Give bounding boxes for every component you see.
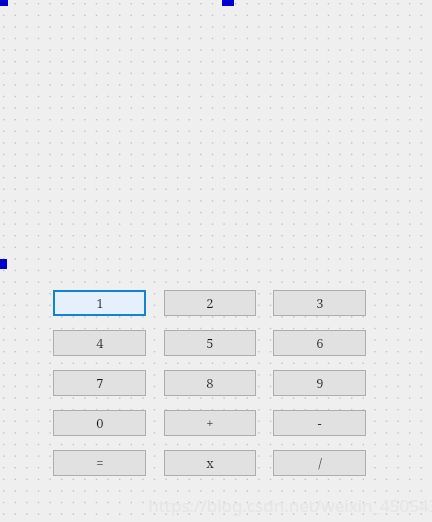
staticText: 0 (96, 414, 104, 432)
button[interactable]: 2 (164, 290, 256, 316)
staticText: - (317, 414, 322, 432)
button[interactable]: = (53, 450, 146, 476)
button[interactable]: + (164, 410, 256, 436)
staticText: x (206, 454, 214, 472)
staticText: 8 (206, 374, 214, 392)
staticText: 4 (96, 334, 104, 352)
button[interactable]: 0 (53, 410, 146, 436)
staticText: 9 (316, 374, 324, 392)
staticText: https://blog.csdn.net/weixin_45054387 (148, 494, 432, 517)
staticText: 2 (206, 294, 214, 312)
button[interactable]: x (164, 450, 256, 476)
button[interactable]: 1 (53, 290, 146, 316)
staticText: 6 (316, 334, 324, 352)
staticText: = (96, 454, 104, 472)
button[interactable]: 9 (273, 370, 366, 396)
staticText: + (206, 414, 214, 432)
button[interactable]: / (273, 450, 366, 476)
button[interactable]: - (273, 410, 366, 436)
button[interactable]: 5 (164, 330, 256, 356)
button[interactable]: 7 (53, 370, 146, 396)
staticText: / (318, 454, 322, 472)
button[interactable]: 6 (273, 330, 366, 356)
staticText: 1 (96, 294, 104, 312)
button[interactable]: 4 (53, 330, 146, 356)
staticText: 3 (316, 294, 324, 312)
button[interactable]: 3 (273, 290, 366, 316)
button[interactable]: 8 (164, 370, 256, 396)
staticText: 5 (206, 334, 214, 352)
staticText: 7 (96, 374, 104, 392)
